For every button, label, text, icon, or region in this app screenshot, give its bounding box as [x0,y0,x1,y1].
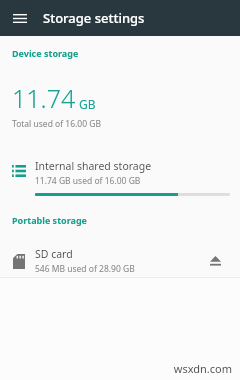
button[interactable]: Open navigation menu [9,7,31,29]
staticText: Total used of 16.00 GB [12,118,101,130]
staticText: 11.74 [12,81,76,115]
staticText: Internal shared storage [35,159,152,173]
staticText: 11.74 GB used of 16.00 GB [35,175,141,187]
button[interactable]: Internal shared storage [0,150,240,200]
staticText: GB [79,96,96,112]
staticText: SD card [35,247,73,261]
button[interactable]: Eject SD card [204,250,226,272]
staticText: Device storage [12,47,79,59]
button[interactable]: SD card [0,244,240,278]
staticText: Portable storage [12,214,87,226]
staticText: wsxdn.com [173,361,232,376]
staticText: Storage settings [43,9,145,27]
staticText: 546 MB used of 28.90 GB [35,263,135,275]
